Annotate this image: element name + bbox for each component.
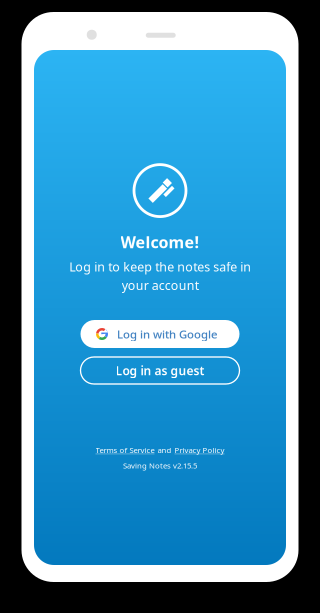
staticText: Log in to keep the notes safe in your ac… xyxy=(69,258,251,293)
button[interactable]: Log in with Google xyxy=(80,320,239,348)
staticText: Saving Notes v2.15.5 xyxy=(123,460,197,471)
staticText: Privacy Policy xyxy=(174,445,224,455)
staticText: Log in with Google xyxy=(117,326,218,341)
staticText: Welcome! xyxy=(120,231,199,253)
staticText: and xyxy=(157,445,171,455)
staticText: Terms of Service xyxy=(95,445,154,455)
staticText: Log in as guest xyxy=(115,362,204,378)
button[interactable]: Log in as guest xyxy=(80,357,239,384)
button[interactable]: Privacy Policy xyxy=(174,445,224,455)
button[interactable]: Terms of Service xyxy=(95,445,154,455)
